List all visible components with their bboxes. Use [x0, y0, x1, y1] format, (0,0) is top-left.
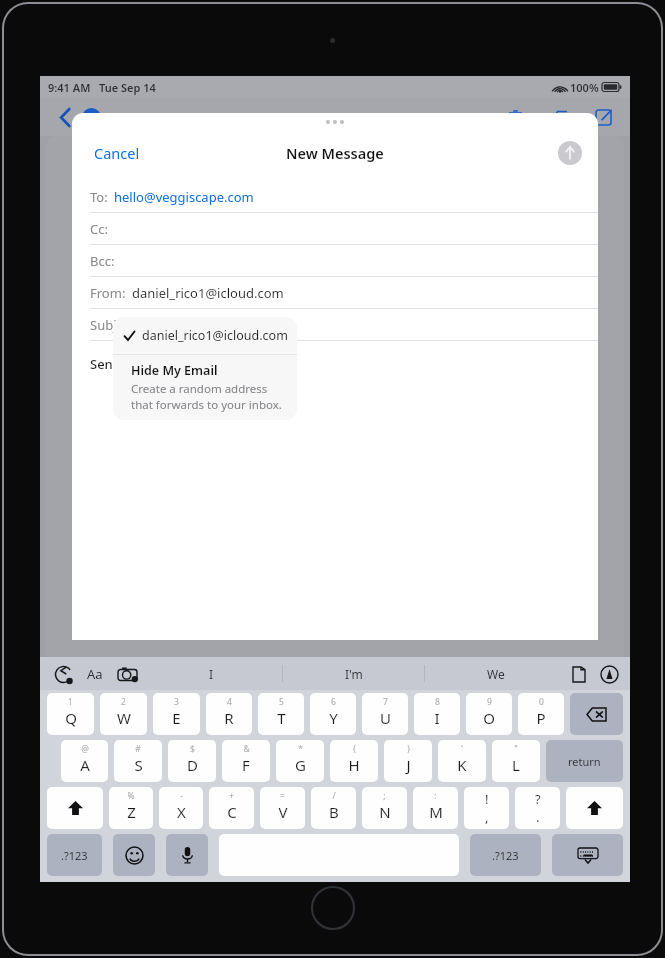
button[interactable]: 7 [362, 693, 408, 735]
button[interactable]: 5 [258, 693, 304, 735]
staticText: ) [407, 743, 410, 755]
button[interactable]: Move to folder [544, 102, 574, 132]
staticText: P [536, 708, 546, 728]
button[interactable]: Backspace [570, 693, 623, 735]
button[interactable]: Bcc: [72, 245, 598, 277]
button[interactable]: Delete [500, 102, 530, 132]
button[interactable]: # [114, 740, 162, 782]
button[interactable]: Shift [566, 787, 623, 829]
button[interactable]: We [425, 657, 566, 690]
button[interactable]: 1 [47, 693, 94, 735]
staticText: Cc: [90, 220, 108, 238]
button[interactable]: 0 [518, 693, 564, 735]
staticText: % [127, 790, 135, 802]
button[interactable]: Shift [47, 787, 103, 829]
button[interactable]: Cancel [90, 139, 144, 167]
button[interactable]: : [413, 787, 458, 829]
staticText: Subject: [90, 316, 139, 334]
button[interactable]: I [140, 657, 282, 690]
button[interactable]: To: [72, 181, 598, 213]
staticText: 8 [435, 696, 440, 708]
button[interactable]: ? [515, 787, 560, 829]
staticText: * [298, 743, 303, 755]
button[interactable]: 2 [100, 693, 147, 735]
staticText: . [536, 808, 540, 826]
staticText: 9:41 AM [48, 80, 91, 95]
staticText: V [278, 802, 288, 822]
button[interactable]: = [260, 787, 305, 829]
button[interactable]: Cc: [72, 213, 598, 245]
button[interactable]: Back [52, 104, 78, 130]
button[interactable]: Emoji [113, 834, 155, 876]
staticText: X [177, 802, 186, 822]
staticText: Cancel [94, 143, 140, 163]
button[interactable]: % [109, 787, 153, 829]
button[interactable]: daniel_rico1@icloud.com [113, 317, 297, 354]
button[interactable]: ! [464, 787, 509, 829]
button[interactable]: Hide keyboard [552, 834, 623, 876]
staticText: ? [535, 790, 541, 808]
button[interactable]: 6 [310, 693, 356, 735]
staticText: B [329, 802, 339, 822]
button[interactable]: Attach file [566, 661, 592, 687]
button[interactable]: Markup [596, 661, 622, 687]
button[interactable]: & [222, 740, 270, 782]
staticText: C [227, 802, 237, 822]
button[interactable]: Insert photo [114, 661, 140, 687]
staticText: 3 [174, 696, 179, 708]
button[interactable]: Format text [82, 661, 108, 687]
button[interactable]: ' [438, 740, 486, 782]
button[interactable]: ; [362, 787, 407, 829]
button[interactable]: 8 [414, 693, 460, 735]
button[interactable]: return [546, 740, 623, 782]
staticText: 0 [539, 696, 544, 708]
staticText: / [332, 790, 336, 802]
staticText: daniel_rico1@icloud.com [132, 284, 284, 302]
staticText: To: [90, 188, 108, 206]
staticText: @ [81, 743, 89, 755]
button[interactable]: Compose [588, 102, 618, 132]
staticText: R [224, 708, 234, 728]
button[interactable]: I'm [283, 657, 424, 690]
staticText: .?123 [492, 848, 519, 863]
button[interactable]: * [276, 740, 324, 782]
staticText: = [280, 790, 285, 802]
button[interactable]: Send [558, 141, 582, 165]
staticText: Aa [87, 665, 103, 683]
staticText: I [209, 666, 214, 682]
staticText: ' [461, 743, 463, 755]
button[interactable]: ) [384, 740, 432, 782]
button[interactable]: Dictate [166, 834, 208, 876]
staticText: 7 [383, 696, 388, 708]
staticText: $ [190, 743, 195, 755]
staticText: L [512, 755, 520, 775]
button[interactable]: - [159, 787, 203, 829]
button[interactable]: Subject: [72, 309, 598, 341]
staticText: Create a random address [131, 381, 268, 397]
button[interactable]: Undo [50, 661, 76, 687]
staticText: Bcc: [90, 252, 115, 270]
button[interactable]: / [311, 787, 356, 829]
button[interactable]: From: [72, 277, 598, 309]
staticText: K [457, 755, 467, 775]
staticText: & [243, 743, 250, 755]
staticText: O [483, 708, 495, 728]
button[interactable]: Hide My Email [113, 355, 297, 413]
staticText: 6 [331, 696, 336, 708]
button[interactable]: @ [61, 740, 108, 782]
staticText: + [229, 790, 234, 802]
button[interactable]: 3 [153, 693, 200, 735]
button[interactable]: + [209, 787, 254, 829]
staticText: G [295, 755, 306, 775]
staticText: Tue Sep 14 [99, 80, 156, 95]
button[interactable]: 4 [206, 693, 252, 735]
button[interactable]: .?123 [47, 834, 102, 876]
button[interactable]: 9 [466, 693, 512, 735]
button[interactable]: " [492, 740, 540, 782]
staticText: F [242, 755, 250, 775]
button[interactable]: .?123 [470, 834, 541, 876]
staticText: We [487, 666, 505, 682]
button[interactable]: $ [168, 740, 216, 782]
button[interactable]: ( [330, 740, 378, 782]
